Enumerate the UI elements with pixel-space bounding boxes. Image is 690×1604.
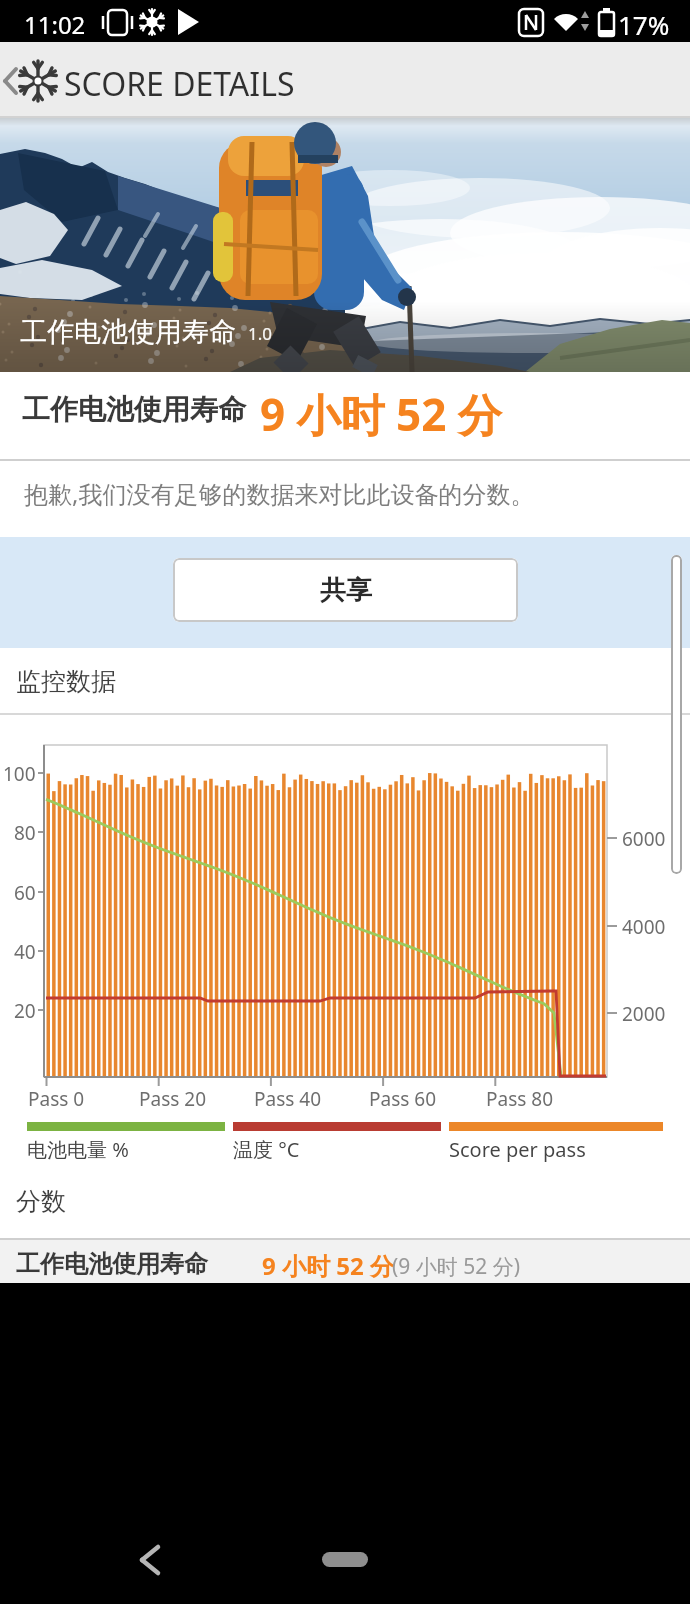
staticText: 20 (14, 998, 36, 1022)
staticText: 分数 (16, 1186, 66, 1217)
staticText: 1.0 (248, 322, 273, 345)
staticText: 40 (14, 939, 36, 963)
staticText: SCORE DETAILS (64, 62, 295, 106)
button[interactable]: 共享 (173, 558, 518, 622)
staticText: 温度 °C (233, 1136, 300, 1163)
staticText: 监控数据 (16, 666, 116, 697)
staticText: 100 (3, 761, 36, 785)
staticText: 抱歉,我们没有足够的数据来对比此设备的分数。 (24, 477, 535, 510)
staticText: 工作电池使用寿命 (16, 1249, 208, 1279)
staticText: 11:02 (24, 8, 86, 41)
staticText: Pass 60 (369, 1086, 437, 1112)
staticText: 工作电池使用寿命 (22, 392, 246, 427)
staticText: Pass 20 (139, 1086, 207, 1112)
staticText: 80 (14, 820, 36, 844)
staticText: Pass 80 (486, 1086, 554, 1112)
staticText: Score per pass (449, 1136, 586, 1163)
button[interactable] (315, 1530, 375, 1590)
staticText: 4000 (622, 914, 666, 940)
staticText: (9 小时 52 分) (392, 1252, 521, 1281)
staticText: 6000 (622, 826, 666, 852)
staticText: 9 小时 52 分 (260, 384, 502, 444)
staticText: 60 (14, 880, 36, 904)
staticText: 17% (618, 7, 670, 42)
staticText: 2000 (622, 1001, 666, 1027)
staticText: 共享 (320, 574, 372, 607)
button[interactable] (0, 55, 60, 105)
button[interactable] (120, 1530, 180, 1590)
staticText: 9 小时 52 分 (262, 1249, 394, 1282)
staticText: 电池电量 % (27, 1136, 129, 1163)
staticText: 工作电池使用寿命 (20, 315, 236, 349)
staticText: Pass 0 (28, 1086, 85, 1112)
staticText: Pass 40 (254, 1086, 322, 1112)
